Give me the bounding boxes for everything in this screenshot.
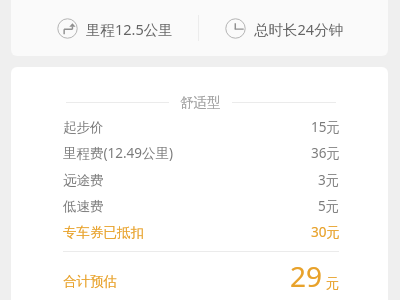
staticText: 低速费 [63, 198, 104, 215]
staticText: 里程12.5公里 [86, 19, 173, 39]
button[interactable]: 合计预估 [11, 259, 388, 300]
other: Distance travelled [57, 18, 78, 39]
staticText: 合计预估 [63, 273, 117, 290]
button[interactable]: 低速费 [11, 193, 388, 219]
staticText: 远途费 [63, 172, 104, 189]
staticText: 总时长24分钟 [254, 19, 344, 39]
staticText: 30元 [311, 223, 340, 241]
staticText: 元 [326, 275, 340, 292]
button[interactable]: Trip duration [225, 14, 344, 43]
button[interactable]: 远途费 [11, 167, 388, 193]
button[interactable]: 起步价 [11, 114, 388, 140]
staticText: 里程费(12.49公里) [63, 144, 174, 162]
other: Trip duration [225, 18, 246, 39]
button[interactable]: 里程费(12.49公里) [11, 140, 388, 166]
staticText: 15元 [311, 118, 340, 136]
staticText: 36元 [311, 144, 340, 162]
staticText: 舒适型 [180, 94, 221, 110]
button[interactable]: Distance travelled [57, 14, 173, 43]
staticText: 起步价 [63, 119, 104, 136]
button[interactable]: 专车券已抵扣 [11, 219, 388, 245]
staticText: 29 [290, 257, 323, 295]
staticText: 3元 [318, 171, 340, 189]
staticText: 专车券已抵扣 [63, 224, 144, 241]
staticText: 5元 [318, 197, 340, 215]
